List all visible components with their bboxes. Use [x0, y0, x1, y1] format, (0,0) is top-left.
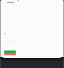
button[interactable] — [4, 53, 16, 56]
button[interactable] — [4, 50, 16, 53]
button[interactable] — [0, 58, 20, 68]
